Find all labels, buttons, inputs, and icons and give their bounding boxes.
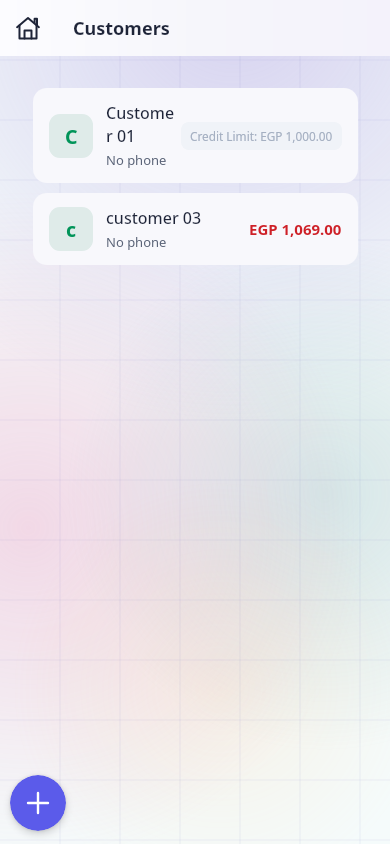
button[interactable]: Home [11, 11, 45, 45]
staticText: Customer 01 [106, 102, 177, 147]
button[interactable]: C [33, 88, 358, 183]
staticText: EGP 1,069.00 [249, 219, 342, 239]
staticText: C [65, 123, 78, 150]
staticText: Credit Limit: EGP 1,000.00 [190, 128, 333, 144]
staticText: Customers [73, 16, 170, 41]
staticText: c [66, 216, 77, 243]
button[interactable]: c [33, 193, 358, 265]
staticText: No phone [106, 151, 167, 169]
button[interactable]: Add customer [10, 775, 66, 831]
staticText: customer 03 [106, 207, 202, 229]
staticText: No phone [106, 233, 167, 251]
